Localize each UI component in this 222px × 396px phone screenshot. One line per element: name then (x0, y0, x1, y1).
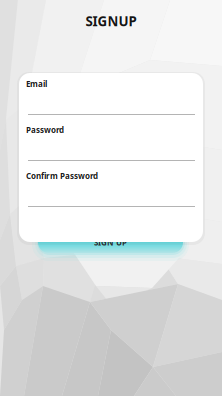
button[interactable]: SIGN UP (38, 232, 183, 253)
staticText: Confirm Password (26, 171, 98, 181)
button[interactable]: Email (28, 79, 195, 115)
staticText: SIGNUP (85, 12, 136, 30)
staticText: SIGN UP (94, 237, 127, 248)
button[interactable]: Confirm Password (28, 171, 195, 207)
staticText: Password (26, 125, 64, 135)
staticText: Email (26, 79, 47, 89)
button[interactable]: Password (28, 125, 195, 161)
